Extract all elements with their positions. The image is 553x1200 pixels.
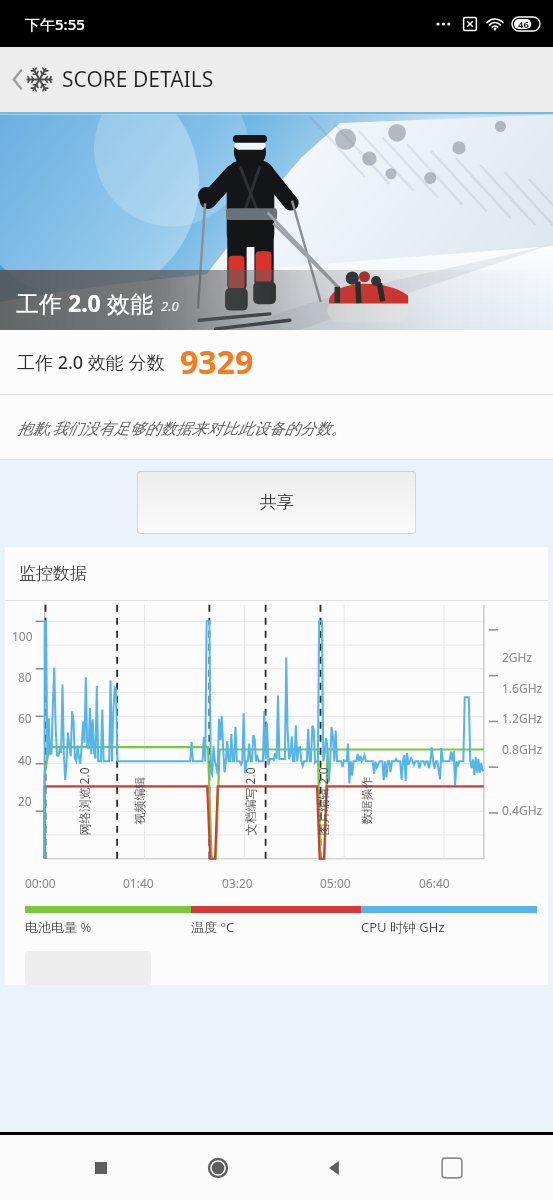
staticText: 监控数据 xyxy=(19,563,87,584)
staticText: 0.8GHz xyxy=(502,741,543,757)
staticText: 工作 xyxy=(16,287,68,318)
staticText: 电池电量 % xyxy=(25,918,92,936)
staticText: 40 xyxy=(18,752,32,768)
button[interactable]: SCORE DETAILS xyxy=(0,47,553,112)
staticText: 2GHz xyxy=(502,649,533,665)
staticText: 1.2GHz xyxy=(502,710,543,726)
staticText: 网络浏览 2.0 xyxy=(75,766,91,835)
staticText: 效能 xyxy=(101,287,153,318)
staticText: 01:40 xyxy=(123,875,154,891)
staticText: 20 xyxy=(18,793,32,809)
staticText: 00:00 xyxy=(25,875,56,891)
staticText: 1.6GHz xyxy=(502,680,543,696)
button[interactable]: Recents xyxy=(73,1140,129,1196)
staticText: 60 xyxy=(18,710,32,726)
staticText: 80 xyxy=(18,669,32,685)
staticText: 05:00 xyxy=(320,875,351,891)
staticText: 100 xyxy=(12,628,33,644)
staticText: 抱歉,我们没有足够的数据来对比此设备的分数。 xyxy=(17,417,347,438)
staticText: 2.0 xyxy=(68,287,101,318)
button[interactable]: 共享 xyxy=(137,471,416,534)
staticText: 共享 xyxy=(260,492,294,513)
staticText: 06:40 xyxy=(419,875,450,891)
staticText: 9329 xyxy=(180,340,254,384)
button[interactable]: Back xyxy=(307,1140,363,1196)
staticText: 图片编辑 2.0 xyxy=(314,766,330,835)
staticText: 工作 2.0 效能 分数 xyxy=(17,350,165,375)
staticText: 2.0 xyxy=(161,297,179,315)
staticText: 03:20 xyxy=(222,875,253,891)
staticText: 温度 °C xyxy=(191,918,235,936)
staticText: 视频编辑 xyxy=(131,776,146,824)
staticText: 0.4GHz xyxy=(502,802,543,818)
staticText: 46 xyxy=(518,18,529,31)
button[interactable]: Full screen xyxy=(424,1140,480,1196)
staticText: 文档编写 2.0 xyxy=(241,766,257,835)
staticText: SCORE DETAILS xyxy=(62,65,214,94)
button[interactable]: Home xyxy=(190,1140,246,1196)
staticText: 数据操作 xyxy=(358,776,373,824)
staticText: 下午5:55 xyxy=(25,14,85,34)
staticText: CPU 时钟 GHz xyxy=(361,918,445,936)
